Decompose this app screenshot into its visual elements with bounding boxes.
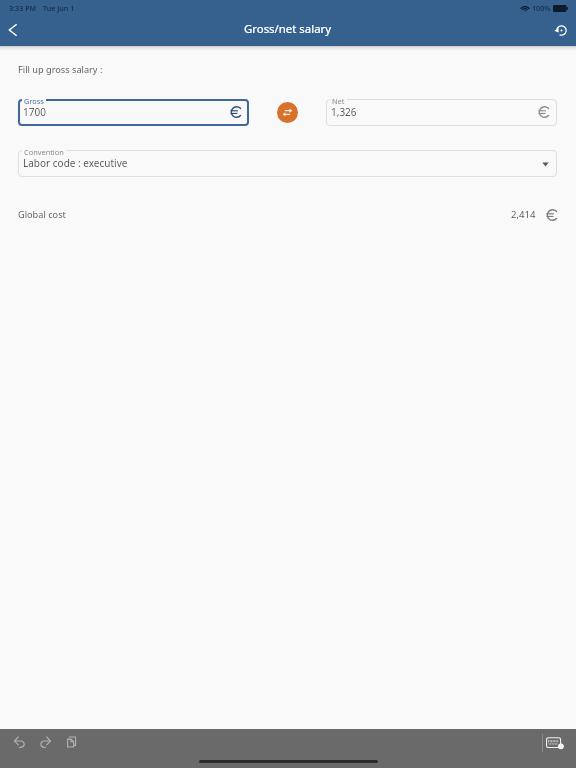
- staticText: Tue Jun 1: [43, 3, 75, 13]
- button[interactable]: Back: [0, 17, 26, 43]
- staticText: Labor code : executive: [23, 156, 128, 170]
- staticText: 1700: [23, 105, 46, 119]
- button[interactable]: [18, 150, 557, 177]
- button[interactable]: Switch keyboard: [546, 733, 567, 753]
- staticText: Convention: [24, 147, 64, 157]
- button[interactable]: Copy: [60, 731, 82, 753]
- button[interactable]: Undo: [9, 731, 31, 753]
- staticText: Net: [332, 96, 345, 106]
- staticText: 3:33 PM: [9, 3, 37, 13]
- staticText: Gross/net salary: [244, 21, 332, 37]
- button[interactable]: Redo: [34, 731, 56, 753]
- staticText: 100%: [532, 3, 551, 13]
- staticText: Gross: [24, 96, 44, 106]
- button[interactable]: Reset history: [548, 17, 574, 43]
- staticText: Global cost: [18, 208, 66, 221]
- staticText: 2,414: [511, 208, 536, 221]
- staticText: 1,326: [331, 105, 357, 119]
- staticText: Fill up gross salary :: [18, 63, 103, 76]
- button[interactable]: [18, 99, 249, 126]
- button[interactable]: [326, 99, 557, 126]
- button[interactable]: Swap gross and net: [277, 102, 298, 123]
